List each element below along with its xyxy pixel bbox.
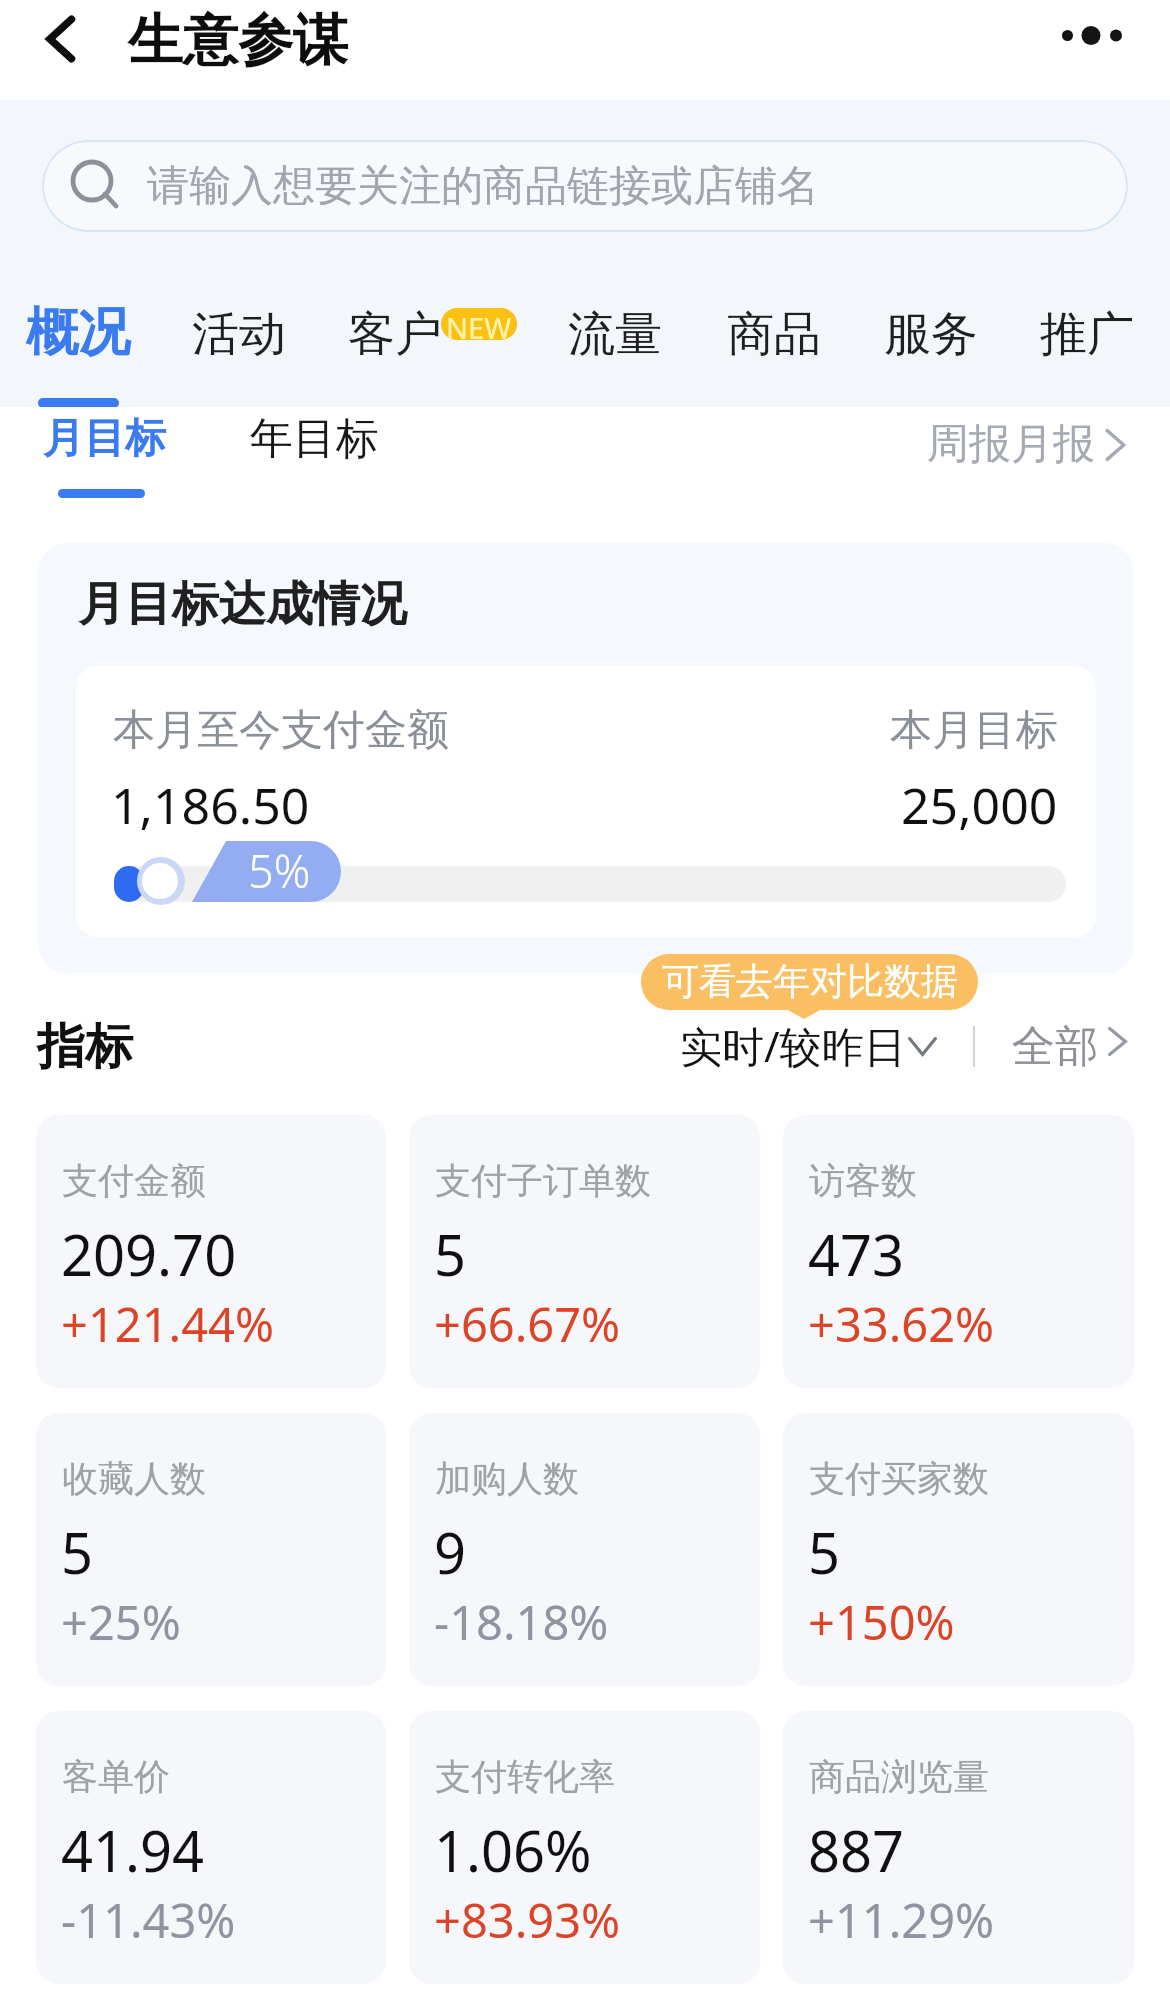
staticText: 5: [61, 1514, 94, 1590]
button[interactable]: 商品浏览量: [783, 1711, 1134, 1984]
staticText: 支付子订单数: [435, 1158, 651, 1203]
button[interactable]: 全部: [1000, 1011, 1140, 1073]
staticText: +25%: [61, 1590, 181, 1654]
button[interactable]: 月目标: [26, 407, 183, 498]
button[interactable]: 服务: [880, 305, 982, 364]
button[interactable]: 周报月报: [917, 418, 1137, 471]
button[interactable]: 支付转化率: [409, 1711, 760, 1984]
staticText: 全部: [1012, 1020, 1098, 1074]
button[interactable]: 商品: [723, 305, 825, 364]
button[interactable]: 概况: [22, 300, 134, 366]
staticText: 月目标: [43, 413, 166, 465]
staticText: 5%: [248, 840, 311, 901]
staticText: +33.62%: [808, 1292, 995, 1356]
staticText: 服务: [884, 305, 978, 364]
staticText: 周报月报: [927, 418, 1095, 471]
button[interactable]: 活动: [188, 305, 290, 364]
staticText: -18.18%: [434, 1590, 609, 1654]
button[interactable]: 加购人数: [409, 1413, 760, 1686]
button[interactable]: 支付金额: [36, 1115, 386, 1388]
staticText: 商品: [727, 305, 821, 364]
staticText: -11.43%: [61, 1888, 236, 1952]
staticText: NEW: [446, 308, 512, 340]
staticText: 支付买家数: [809, 1456, 989, 1501]
staticText: 1,186.50: [111, 771, 310, 839]
button[interactable]: 年目标: [233, 412, 396, 466]
button[interactable]: 支付买家数: [783, 1413, 1134, 1686]
staticText: +11.29%: [808, 1888, 995, 1952]
staticText: 209.70: [61, 1216, 237, 1292]
staticText: 活动: [192, 305, 286, 364]
staticText: 473: [808, 1216, 905, 1292]
staticText: 指标: [37, 1017, 133, 1077]
staticText: 9: [434, 1514, 467, 1590]
button[interactable]: 支付子订单数: [409, 1115, 760, 1388]
staticText: 5: [808, 1514, 841, 1590]
staticText: 推广: [1040, 305, 1134, 364]
button[interactable]: 客户: [344, 305, 446, 364]
staticText: 流量: [568, 305, 662, 364]
staticText: 收藏人数: [62, 1456, 206, 1501]
staticText: 生意参谋: [128, 6, 348, 75]
button[interactable]: 访客数: [783, 1115, 1134, 1388]
button[interactable]: 月目标达成情况: [38, 543, 1134, 974]
staticText: 25,000: [901, 771, 1058, 839]
button[interactable]: 推广: [1036, 305, 1138, 364]
staticText: 加购人数: [435, 1456, 579, 1501]
staticText: 实时/较昨日: [680, 1017, 906, 1074]
button[interactable]: 流量: [564, 305, 666, 364]
staticText: 1.06%: [434, 1812, 592, 1888]
staticText: 年目标: [250, 412, 379, 466]
button[interactable]: More options: [1040, 0, 1140, 72]
button[interactable]: 客单价: [36, 1711, 386, 1984]
staticText: 商品浏览量: [809, 1754, 989, 1799]
button[interactable]: Back: [20, 0, 100, 79]
staticText: 请输入想要关注的商品链接或店铺名: [147, 160, 819, 213]
staticText: 客户: [348, 305, 442, 364]
staticText: 本月目标: [890, 704, 1058, 757]
staticText: 访客数: [809, 1158, 917, 1203]
staticText: +121.44%: [61, 1292, 274, 1356]
staticText: +66.67%: [434, 1292, 621, 1356]
staticText: 月目标达成情况: [78, 575, 407, 634]
staticText: +150%: [808, 1590, 955, 1654]
staticText: 可看去年对比数据: [662, 958, 958, 1005]
staticText: 支付金额: [62, 1158, 206, 1203]
button[interactable]: 请输入想要关注的商品链接或店铺名: [42, 140, 1128, 232]
staticText: 887: [808, 1812, 905, 1888]
staticText: 支付转化率: [435, 1754, 615, 1799]
staticText: 5: [434, 1216, 467, 1292]
staticText: 本月至今支付金额: [113, 704, 449, 757]
staticText: 41.94: [61, 1812, 205, 1888]
button[interactable]: 实时/较昨日: [664, 1011, 954, 1073]
button[interactable]: 收藏人数: [36, 1413, 386, 1686]
staticText: 客单价: [62, 1754, 170, 1799]
staticText: 概况: [26, 300, 130, 366]
staticText: +83.93%: [434, 1888, 621, 1952]
